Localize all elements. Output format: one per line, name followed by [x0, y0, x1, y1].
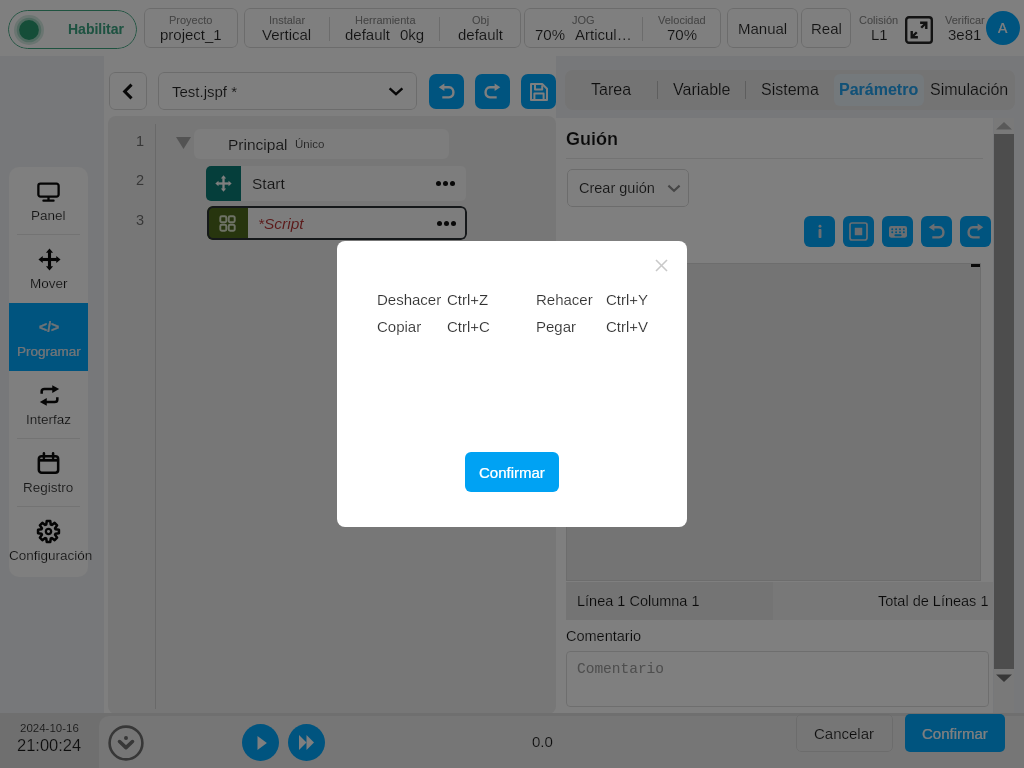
staticText: Mover — [30, 276, 68, 291]
staticText: Único — [295, 138, 325, 151]
staticText: 70% — [667, 26, 698, 43]
staticText: Total de Líneas 1 — [878, 593, 989, 609]
staticText: project_1 — [160, 26, 222, 43]
staticText: JOG — [572, 14, 595, 26]
staticText: Confirmar — [922, 725, 988, 742]
staticText: Ctrl+Z — [447, 291, 489, 308]
staticText: Confirmar — [479, 464, 545, 481]
staticText: Cancelar — [814, 725, 875, 742]
button[interactable]: Proyecto — [144, 8, 238, 48]
staticText: Sistema — [761, 81, 819, 99]
staticText: Ctrl+V — [606, 318, 649, 335]
staticText: 1 — [136, 133, 145, 149]
staticText: Deshacer — [377, 291, 442, 308]
button[interactable]: Parámetro — [834, 74, 924, 106]
staticText: Parámetro — [839, 81, 919, 99]
button[interactable]: Principal — [194, 129, 449, 159]
staticText: Principal — [228, 136, 288, 153]
button[interactable]: A — [986, 11, 1020, 45]
button[interactable] — [9, 507, 88, 575]
staticText: </> — [39, 319, 60, 335]
button[interactable]: Cerrar — [647, 251, 675, 279]
staticText: Línea 1 Columna 1 — [577, 593, 700, 609]
button[interactable]: Instalar — [244, 8, 521, 48]
button[interactable]: Simulación — [924, 74, 1015, 106]
button[interactable] — [9, 167, 88, 235]
staticText: 2024-10-16 — [20, 722, 79, 735]
button[interactable] — [9, 371, 88, 439]
staticText: Real — [811, 20, 842, 37]
staticText: Instalar — [269, 14, 306, 26]
staticText: Manual — [738, 20, 788, 37]
staticText: Colisión — [859, 14, 899, 26]
button[interactable]: Confirmar — [465, 452, 559, 492]
button[interactable]: Herramienta 4 — [960, 216, 991, 247]
staticText: 0kg — [400, 26, 425, 43]
button[interactable]: Sistema — [746, 74, 834, 106]
button[interactable]: Cancelar — [796, 714, 893, 752]
button[interactable]: Atrás — [109, 72, 147, 110]
staticText: Obj — [472, 14, 490, 26]
staticText: Verificar — [945, 14, 985, 26]
button[interactable]: Tarea — [565, 74, 658, 106]
button[interactable]: Acción — [521, 74, 556, 109]
staticText: 0.0 — [532, 733, 553, 750]
staticText: Registro — [23, 480, 74, 495]
staticText: Configuración — [9, 548, 88, 563]
staticText: Ctrl+Y — [606, 291, 649, 308]
staticText: default — [458, 26, 504, 43]
button[interactable]: Acción — [429, 74, 464, 109]
button[interactable]: Crear guión — [567, 169, 689, 207]
staticText: Variable — [673, 81, 731, 99]
button[interactable]: *Script — [207, 206, 467, 240]
staticText: L1 — [871, 26, 888, 43]
button[interactable]: Confirmar — [905, 714, 1005, 752]
staticText: Comentario — [577, 661, 665, 677]
staticText: 21:00:24 — [17, 736, 82, 754]
button[interactable]: Colapsar — [108, 725, 144, 761]
staticText: 70% — [535, 26, 566, 43]
staticText: *Script — [258, 215, 437, 232]
staticText: Crear guión — [579, 180, 667, 196]
staticText: Vertical — [262, 26, 312, 43]
button[interactable]: Start — [206, 166, 466, 201]
staticText: Interfaz — [26, 412, 72, 427]
staticText: Proyecto — [169, 14, 213, 26]
button[interactable]: Herramienta 1 — [843, 216, 874, 247]
button[interactable]: Herramienta 2 — [882, 216, 913, 247]
staticText: 2 — [136, 172, 145, 188]
button[interactable] — [9, 235, 88, 303]
button[interactable]: Variable — [658, 74, 746, 106]
staticText: 3 — [136, 212, 145, 228]
staticText: Rehacer — [536, 291, 593, 308]
button[interactable] — [9, 303, 88, 371]
staticText: default — [345, 26, 391, 43]
button[interactable]: Real — [801, 8, 851, 48]
staticText: Guión — [566, 129, 618, 149]
button[interactable]: Herramienta 3 — [921, 216, 952, 247]
staticText: Tarea — [591, 81, 632, 99]
button[interactable]: Test.jspf * — [158, 72, 417, 110]
staticText: Programar — [17, 344, 81, 359]
staticText: 3e81 — [948, 26, 982, 43]
staticText: Velocidad — [658, 14, 706, 26]
staticText: Pegar — [536, 318, 577, 335]
staticText: Habilitar — [68, 21, 125, 37]
staticText: Comentario — [566, 628, 641, 644]
button[interactable]: Reproducir — [242, 724, 279, 761]
staticText: Panel — [31, 208, 66, 223]
staticText: Simulación — [930, 81, 1009, 99]
button[interactable]: Herramienta 0 — [804, 216, 835, 247]
staticText: Copiar — [377, 318, 422, 335]
staticText: Start — [252, 175, 436, 192]
button[interactable]: Avance rápido — [288, 724, 325, 761]
button[interactable] — [9, 439, 88, 507]
staticText: Ctrl+C — [447, 318, 490, 335]
staticText: Herramienta — [355, 14, 416, 26]
button[interactable]: Habilitar — [8, 10, 137, 49]
button[interactable]: JOG — [524, 8, 721, 48]
button[interactable]: Acción — [475, 74, 510, 109]
button[interactable]: Pantalla completa — [904, 15, 934, 45]
button[interactable]: Manual — [727, 8, 798, 48]
staticText: Articul… — [575, 26, 632, 43]
